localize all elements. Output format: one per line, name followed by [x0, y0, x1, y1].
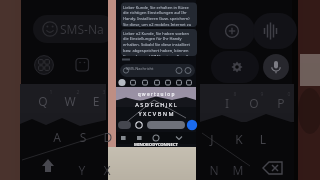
button[interactable]: Lieber Kunde, Sie erhalten in Kürze die … — [123, 5, 195, 27]
staticText: SMS-Nachricht — [126, 66, 154, 71]
staticText: D — [99, 129, 117, 145]
staticText: O — [245, 95, 263, 111]
staticText: Lieber Kunde, Sie erhalten in Kürze die … — [123, 5, 195, 27]
staticText: 2 — [74, 89, 82, 96]
staticText: P — [272, 95, 290, 111]
staticText: S — [74, 129, 92, 145]
staticText: MINDBODYCONNECT — [134, 142, 178, 148]
staticText: X — [98, 162, 116, 178]
staticText: A S D F G H J K L — [118, 101, 194, 109]
staticText: I — [218, 95, 236, 111]
staticText: SMS-Na — [60, 21, 104, 37]
button[interactable]: MINDBODYCONNECT — [134, 142, 178, 148]
staticText: W — [61, 93, 79, 109]
staticText: N — [205, 162, 223, 178]
staticText: Lieber o2 Kunde, Sie haben soeben die Ei… — [123, 31, 195, 56]
staticText: q w e r t z u i o p — [116, 91, 196, 98]
staticText: Y X C V B N M — [123, 110, 189, 118]
button[interactable]: SMS-Na — [60, 21, 120, 37]
staticText: 0 — [285, 91, 293, 98]
staticText: A — [48, 129, 66, 145]
button[interactable]: SMS-Nachricht — [126, 66, 166, 76]
staticText: 9 — [258, 91, 266, 98]
staticText: Y — [73, 162, 91, 178]
staticText: M — [229, 162, 247, 178]
staticText: 8 — [231, 91, 239, 98]
staticText: Q — [34, 93, 52, 109]
staticText: E — [87, 93, 105, 109]
staticText: K — [230, 131, 248, 147]
button[interactable]: Lieber o2 Kunde, Sie haben soeben die Ei… — [123, 31, 195, 56]
staticText: J — [203, 131, 221, 147]
staticText: 3 — [100, 89, 108, 96]
staticText: L — [254, 131, 272, 147]
